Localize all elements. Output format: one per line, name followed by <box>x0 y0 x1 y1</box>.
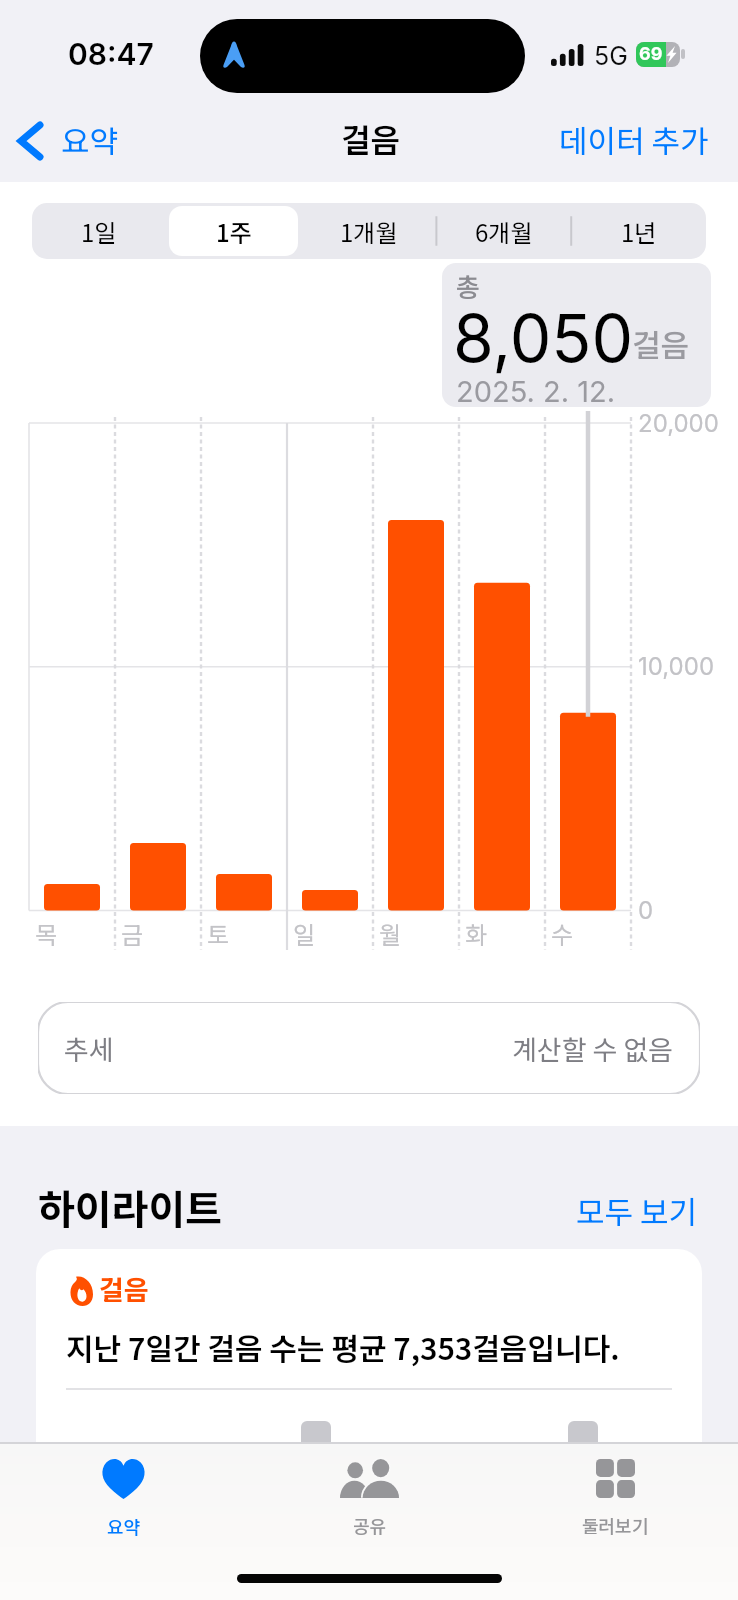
staticText: 0 <box>638 896 654 925</box>
button[interactable]: 둘러보기 <box>492 1444 738 1556</box>
staticText: 5G <box>594 41 628 71</box>
staticText: 공유 <box>353 1512 387 1538</box>
staticText: 데이터 추가 <box>559 117 709 162</box>
button[interactable]: 공유 <box>246 1444 492 1556</box>
button[interactable]: 요약 <box>0 1444 246 1556</box>
staticText: 요약 <box>107 1513 141 1539</box>
button[interactable]: 데이터 추가 <box>544 106 724 174</box>
staticText: 08:47 <box>68 36 154 72</box>
staticText: 수 <box>551 916 574 951</box>
button[interactable]: 1년 <box>571 203 706 259</box>
staticText: 지난 7일간 걸음 수는 평균 7,353걸음입니다. <box>66 1325 620 1368</box>
staticText: 총 <box>456 267 480 305</box>
staticText: 1개월 <box>340 214 398 249</box>
staticText: 걸음 <box>99 1269 149 1308</box>
button[interactable]: 모두 보기 <box>564 1176 706 1232</box>
staticText: 화 <box>465 916 488 951</box>
staticText: 목 <box>35 916 58 951</box>
button[interactable]: 6개월 <box>436 203 571 259</box>
staticText: 추세 <box>64 1029 114 1068</box>
staticText: 둘러보기 <box>582 1512 649 1538</box>
staticText: 하이라이트 <box>38 1178 222 1236</box>
staticText: 1주 <box>216 214 252 249</box>
button[interactable]: 요약 <box>4 108 134 172</box>
staticText: 1일 <box>81 214 117 249</box>
staticText: 8,050 <box>453 298 634 378</box>
staticText: 1년 <box>621 214 657 249</box>
staticText: 2025. 2. 12. <box>456 374 616 407</box>
staticText: 6개월 <box>475 214 533 249</box>
staticText: 토 <box>207 916 230 951</box>
staticText: 월 <box>379 916 402 951</box>
staticText: 모두 보기 <box>576 1188 698 1233</box>
button[interactable]: 1개월 <box>301 203 436 259</box>
staticText: 걸음 <box>632 321 690 366</box>
button[interactable]: 걸음 <box>36 1249 702 1449</box>
staticText: 69 <box>639 43 663 65</box>
staticText: 10,000 <box>638 652 715 681</box>
button[interactable]: 1일 <box>32 203 166 259</box>
staticText: 걸음 <box>341 115 400 161</box>
button[interactable]: 추세 <box>38 1002 700 1094</box>
staticText: 요약 <box>61 117 119 162</box>
staticText: 계산할 수 없음 <box>512 1029 674 1068</box>
staticText: 20,000 <box>638 409 719 438</box>
staticText: 금 <box>121 916 144 951</box>
staticText: 일 <box>293 916 316 951</box>
button[interactable]: 1주 <box>166 203 301 259</box>
